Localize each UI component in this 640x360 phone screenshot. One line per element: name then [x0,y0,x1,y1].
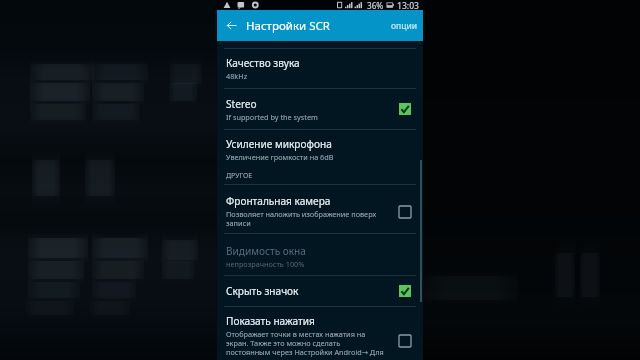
staticText: Отображает точки в местах нажатия на экр… [226,329,384,357]
button[interactable]: опции [385,10,423,41]
staticText: 36% [367,0,384,10]
button[interactable]: Back [217,10,246,41]
staticText: If supported by the system [226,112,318,122]
staticText: Увеличение громкости на 6dB [226,152,334,162]
staticText: Усиление микрофона [226,137,332,151]
button[interactable]: Качество звука [217,49,423,88]
staticText: Видимость окна [226,244,306,258]
button[interactable]: Видимость окна [217,234,423,275]
staticText: 13:03 [397,0,420,10]
staticText: ДРУГОЕ [226,171,253,181]
button[interactable]: Stereo [217,89,423,129]
staticText: Настройки SCR [246,18,330,34]
button[interactable]: Фронтальная камера [217,185,423,233]
staticText: Позволяет наложить изображение поверх за… [226,209,393,228]
staticText: Скрыть значок [226,284,299,298]
staticText: опции [391,20,417,32]
button[interactable]: Усиление микрофона [217,130,423,168]
button[interactable]: Показать нажатия [217,307,423,360]
staticText: Фронтальная камера [226,194,331,208]
staticText: Показать нажатия [226,314,315,328]
staticText: 48kHz [226,71,248,81]
staticText: Качество звука [226,56,300,70]
staticText: Stereo [226,97,257,111]
staticText: непрозрачность 100% [226,259,305,269]
button[interactable]: Скрыть значок [217,276,423,306]
